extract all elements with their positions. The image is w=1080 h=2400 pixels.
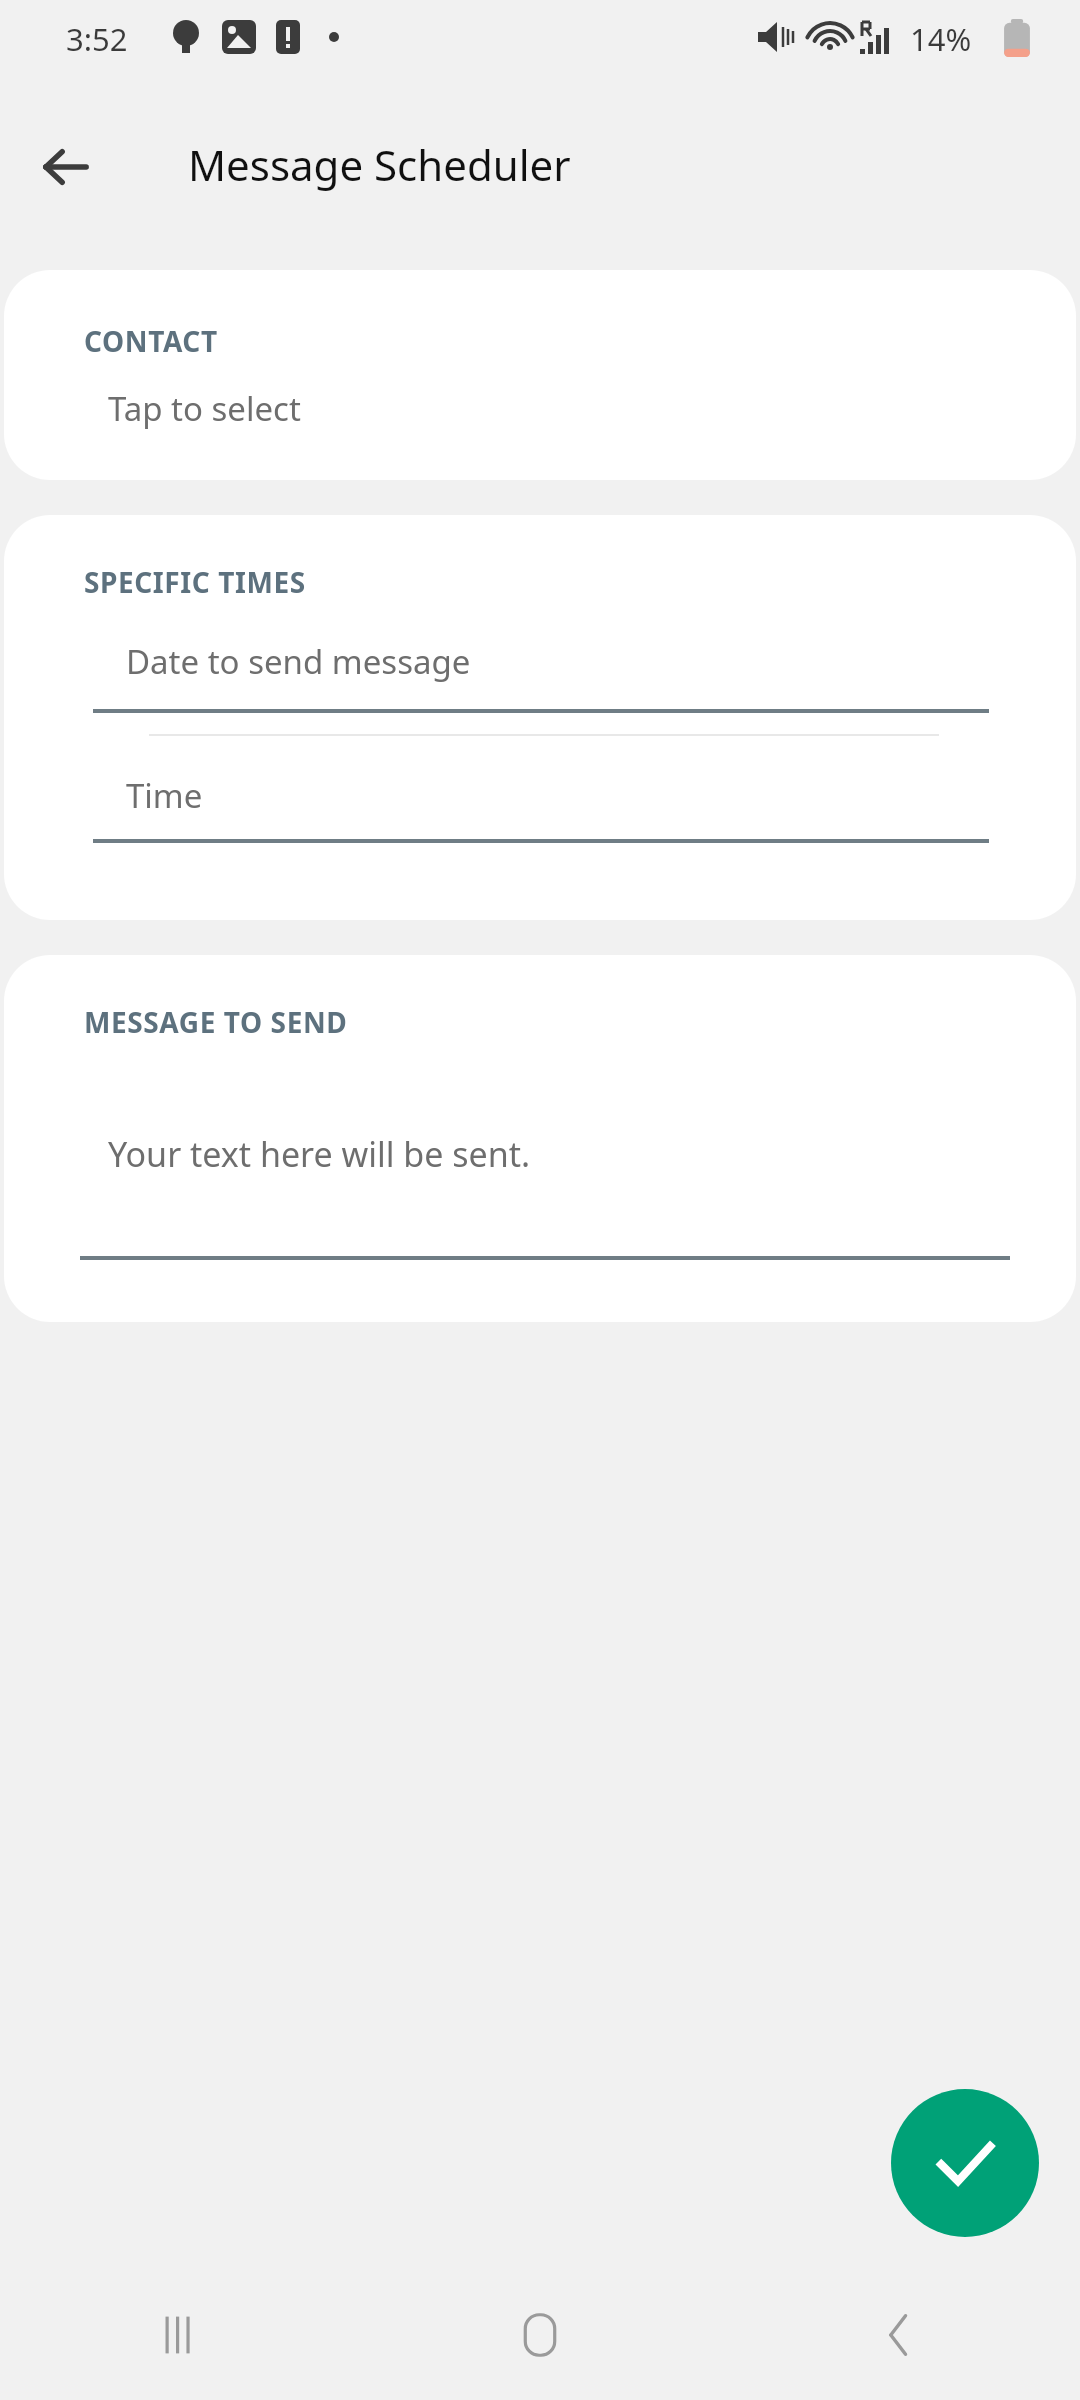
button[interactable]: Date to send message <box>93 633 989 713</box>
button[interactable]: Back <box>26 127 106 207</box>
staticText: Your text here will be sent. <box>108 1131 531 1177</box>
staticText: 14% <box>910 18 972 60</box>
staticText: CONTACT <box>84 322 218 360</box>
button[interactable]: Recent apps <box>0 2270 360 2400</box>
button[interactable]: Home <box>360 2270 720 2400</box>
staticText: 3:52 <box>66 18 128 60</box>
staticText: SPECIFIC TIMES <box>84 563 306 601</box>
staticText: MESSAGE TO SEND <box>84 1003 348 1041</box>
staticText: Time <box>126 773 203 818</box>
button[interactable]: Your text here will be sent. <box>80 1115 1010 1260</box>
button[interactable]: CONTACT <box>4 270 1076 480</box>
staticText: Date to send message <box>126 639 471 684</box>
staticText: Message Scheduler <box>188 136 571 193</box>
staticText: Tap to select <box>108 386 301 431</box>
button[interactable]: Back <box>720 2270 1080 2400</box>
button[interactable]: Confirm <box>891 2089 1039 2237</box>
button[interactable]: Time <box>93 773 989 843</box>
